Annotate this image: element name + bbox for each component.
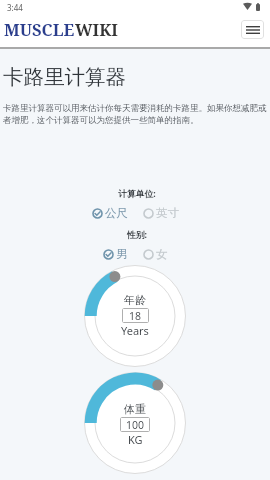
staticText: 公尺: [105, 206, 128, 220]
staticText: KG: [128, 432, 143, 447]
staticText: WIKI: [75, 18, 118, 40]
staticText: 18: [129, 309, 142, 323]
staticText: MUSCLE: [4, 18, 75, 40]
button[interactable]: 100: [120, 417, 150, 432]
button[interactable]: 公尺: [92, 206, 128, 220]
button[interactable]: 男: [103, 247, 128, 261]
button[interactable]: Menu: [241, 20, 264, 39]
staticText: 卡路里计算器: [3, 64, 126, 90]
staticText: 英寸: [156, 206, 179, 220]
staticText: Years: [121, 323, 149, 338]
staticText: 年龄: [124, 293, 146, 307]
button[interactable]: 英寸: [143, 206, 179, 220]
staticText: 男: [116, 247, 128, 261]
staticText: 性别:: [2, 229, 270, 241]
staticText: 体重: [124, 402, 146, 416]
staticText: 计算单位:: [2, 188, 270, 200]
staticText: 3:44: [7, 2, 23, 13]
button[interactable]: 18: [122, 308, 149, 323]
staticText: 卡路里计算器可以用来估计你每天需要消耗的卡路里。如果你想减肥或者增肥，这个计算器…: [3, 103, 268, 125]
staticText: 女: [156, 247, 168, 261]
button[interactable]: 女: [143, 247, 168, 261]
staticText: 100: [126, 418, 145, 432]
